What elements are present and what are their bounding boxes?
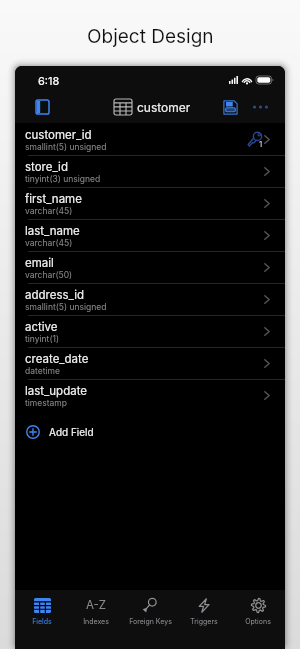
button[interactable]: email (15, 251, 285, 283)
staticText: Foreign Keys (129, 617, 172, 625)
staticText: A-Z (86, 598, 107, 612)
button[interactable]: active (15, 315, 285, 347)
staticText: varchar(45) (25, 206, 73, 216)
staticText: last_update (25, 384, 88, 398)
staticText: varchar(45) (25, 238, 73, 248)
staticText: address_id (25, 288, 84, 302)
staticText: timestamp (25, 398, 67, 408)
staticText: create_date (25, 352, 89, 366)
button[interactable]: More options (248, 95, 272, 119)
button[interactable]: first_name (15, 187, 285, 219)
button[interactable]: customer_id (15, 123, 285, 155)
staticText: 1 (259, 139, 263, 149)
staticText: 6:18 (38, 74, 60, 87)
staticText: last_name (25, 224, 80, 238)
staticText: tinyint(3) unsigned (25, 174, 101, 184)
staticText: customer (137, 100, 191, 115)
staticText: Indexes (83, 617, 109, 625)
button[interactable]: customer (114, 99, 191, 115)
button[interactable]: store_id (15, 155, 285, 187)
staticText: customer_id (25, 128, 92, 142)
staticText: Options (245, 617, 271, 625)
button[interactable]: Add Field (15, 411, 285, 443)
staticText: first_name (25, 192, 82, 206)
button[interactable]: Triggers (177, 590, 231, 649)
staticText: Triggers (190, 617, 218, 625)
button[interactable]: Fields (15, 590, 69, 649)
button[interactable]: Foreign Keys (123, 590, 177, 649)
staticText: smallint(5) unsigned (25, 302, 107, 312)
staticText: active (25, 320, 58, 334)
staticText: store_id (25, 160, 68, 174)
staticText: tinyint(1) (25, 334, 60, 344)
button[interactable]: create_date (15, 347, 285, 379)
staticText: Fields (32, 617, 52, 625)
staticText: smallint(5) unsigned (25, 142, 107, 152)
staticText: varchar(50) (25, 270, 73, 280)
staticText: Add Field (49, 426, 94, 438)
button[interactable]: A-Z (69, 590, 123, 649)
button[interactable]: last_name (15, 219, 285, 251)
button[interactable]: Save (218, 95, 242, 119)
staticText: Object Design (87, 25, 214, 48)
button[interactable]: Options (231, 590, 285, 649)
button[interactable]: last_update (15, 379, 285, 411)
button[interactable]: Toggle sidebar (29, 94, 55, 120)
button[interactable]: address_id (15, 283, 285, 315)
staticText: datetime (25, 366, 60, 376)
staticText: email (25, 256, 54, 270)
